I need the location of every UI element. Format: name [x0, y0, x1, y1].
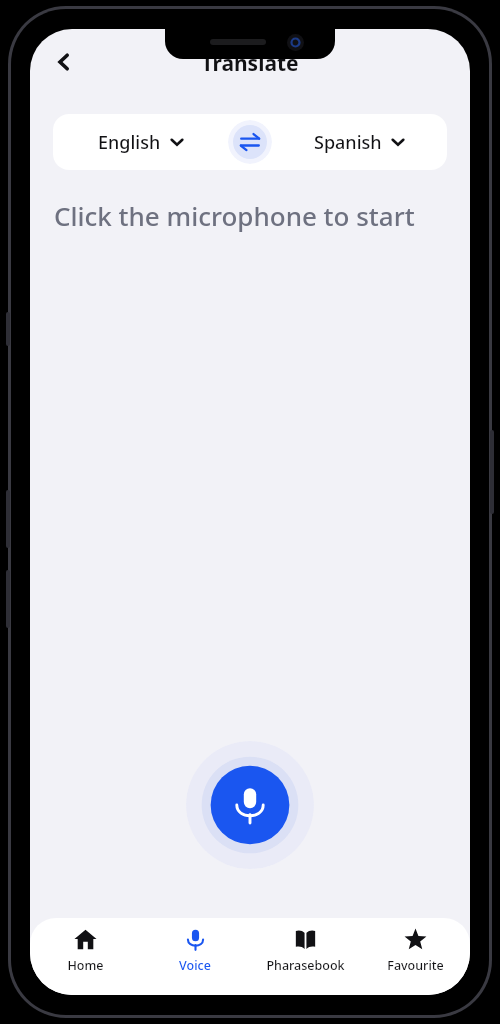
staticText: English	[98, 130, 161, 155]
button[interactable]: Start voice input	[186, 741, 314, 869]
staticText: Pharasebook	[266, 957, 345, 974]
button[interactable]: Voice	[140, 928, 250, 995]
button[interactable]: Pharasebook	[250, 928, 360, 995]
staticText: Favourite	[387, 957, 444, 974]
staticText: Spanish	[314, 130, 382, 155]
button[interactable]: English	[53, 114, 228, 170]
button[interactable]: Home	[30, 928, 140, 995]
staticText: Voice	[179, 957, 211, 974]
staticText: Translate	[201, 49, 299, 78]
button[interactable]: Back	[44, 42, 84, 82]
button[interactable]: Swap languages	[228, 120, 272, 164]
button[interactable]: Favourite	[360, 928, 470, 995]
staticText: Click the microphone to start	[54, 198, 446, 233]
staticText: Home	[67, 957, 104, 974]
button[interactable]: Spanish	[272, 114, 447, 170]
